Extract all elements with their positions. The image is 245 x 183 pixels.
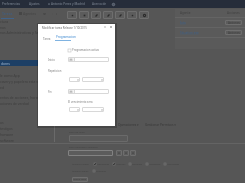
staticText: ed	[0, 85, 4, 90]
button[interactable]: Programacion activa	[68, 48, 99, 52]
staticText: Tarea	[43, 37, 51, 41]
button[interactable]: Abiertas	[113, 162, 129, 165]
button[interactable]: Acciones	[225, 30, 242, 35]
button[interactable]: Preferencias	[1, 0, 22, 8]
staticText: nas Administrativas y Se	[0, 30, 39, 35]
staticText: Mostrar areas:	[72, 169, 89, 172]
staticText: Tareas	[2, 11, 13, 16]
staticText: dores	[1, 61, 10, 65]
staticText: Fin	[48, 90, 52, 94]
staticText: Acciones	[228, 31, 240, 35]
staticText: Cerradas	[132, 162, 143, 165]
button[interactable]: Agentes	[19, 11, 37, 16]
button[interactable]: Operativas	[94, 162, 113, 165]
button[interactable]: Accion 6	[127, 11, 137, 19]
button[interactable]	[69, 77, 80, 82]
button[interactable]: Escudo	[42, 11, 46, 15]
button[interactable]: Gestionar Permisos ▾	[144, 122, 177, 128]
staticText: El vencimiento sera	[68, 100, 93, 104]
staticText: Repeticion	[48, 69, 62, 73]
button[interactable]: Tarea	[42, 36, 52, 42]
button[interactable]: Programacion	[55, 35, 77, 41]
button[interactable]: Configuracion	[111, 2, 116, 7]
staticText: Aplicar filtro	[73, 178, 87, 181]
button[interactable]: Accion 1	[67, 11, 77, 19]
button[interactable]: Tareas	[1, 11, 14, 19]
button[interactable]: Acciones	[225, 20, 242, 25]
button[interactable]: Cerradas	[129, 162, 146, 165]
button[interactable]: Ajustes	[28, 0, 41, 8]
staticText: Modificar tarea Release 1/10/2015	[42, 26, 87, 30]
button[interactable]: Filtro 1	[116, 150, 122, 156]
button[interactable]	[68, 150, 113, 156]
button[interactable]	[68, 57, 109, 62]
staticText: ctura	[0, 19, 9, 24]
staticText: covery y papelera esta vac	[0, 79, 42, 84]
staticText: Agentes	[23, 11, 37, 16]
button[interactable]: Acerca de	[91, 0, 108, 8]
staticText: Inicio	[48, 58, 55, 62]
button[interactable]	[82, 77, 104, 82]
button[interactable]: Practicas	[93, 169, 109, 172]
button[interactable]: Iota	[175, 21, 186, 25]
button[interactable]	[69, 135, 128, 142]
button[interactable]: Accion 2	[79, 11, 89, 19]
button[interactable]: Aplicar filtro	[72, 177, 88, 182]
staticText: Programacion activa	[72, 48, 99, 52]
staticText: entos de acciones, horas,	[0, 95, 41, 100]
staticText: Practicas	[96, 169, 106, 172]
staticText: Agente	[180, 11, 191, 15]
staticText: Abiertas	[116, 162, 126, 165]
staticText: Acciones	[227, 11, 240, 15]
staticText: Gestionar Permisos ▾	[145, 123, 176, 127]
staticText: harware	[0, 132, 14, 137]
staticText: Filtro hashtags y usuarios	[69, 145, 98, 148]
button[interactable]	[68, 89, 109, 94]
staticText: Operativas	[97, 162, 110, 165]
staticText: as	[0, 120, 4, 125]
staticText: Aplazadas	[149, 162, 161, 165]
button[interactable]: Archivadas	[164, 162, 183, 165]
button[interactable]: Aplazadas	[146, 162, 164, 165]
button[interactable]	[82, 107, 104, 112]
staticText: Filtro de tarea	[69, 130, 85, 133]
button[interactable]: Cerrar	[109, 25, 113, 29]
staticText: nas	[0, 25, 6, 30]
staticText: ›	[56, 11, 58, 15]
staticText: aciones de verdad	[0, 101, 29, 106]
button[interactable]	[69, 107, 80, 112]
button[interactable]: Filtro 2	[123, 150, 129, 156]
button[interactable]: Accion 3	[91, 11, 101, 19]
button[interactable]: Accion 7	[139, 11, 149, 19]
staticText: Operaciones ▾	[118, 123, 139, 127]
staticText: Programacion	[56, 35, 76, 39]
button[interactable]: Minimizar	[103, 25, 107, 29]
button[interactable]: Operaciones ▾	[117, 122, 140, 128]
staticText: Acciones	[228, 21, 240, 25]
button[interactable]: Accion 4	[103, 11, 113, 19]
staticText: testigos	[0, 126, 13, 131]
staticText: Mostrar tareas:	[72, 162, 90, 165]
staticText: le como App	[0, 73, 20, 78]
button[interactable]: dores	[0, 60, 44, 66]
button[interactable]: Accion 5	[115, 11, 125, 19]
button[interactable]: Filtro 3	[130, 150, 136, 156]
button[interactable]: Situation.exe	[175, 31, 199, 35]
button[interactable]: Antonio Perez y Madrid	[47, 0, 86, 8]
staticText: Antonio Perez y Madrid	[51, 2, 85, 6]
staticText: Archivadas	[167, 162, 180, 165]
staticText: software	[0, 138, 14, 143]
